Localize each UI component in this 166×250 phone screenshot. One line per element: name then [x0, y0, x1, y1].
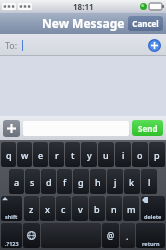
button[interactable]: j	[107, 169, 123, 194]
staticText: a	[14, 176, 20, 188]
staticText: v	[78, 203, 83, 215]
staticText: n	[111, 203, 117, 215]
staticText: t	[71, 149, 75, 161]
staticText: 18:11	[73, 1, 94, 12]
button[interactable]: y	[81, 142, 97, 167]
staticText: x	[45, 203, 50, 215]
staticText: return	[142, 240, 160, 247]
staticText: p	[154, 149, 160, 161]
button[interactable]: t	[65, 142, 80, 167]
staticText: To:	[5, 39, 18, 51]
button[interactable]: m	[123, 196, 139, 221]
button[interactable]: b	[89, 196, 105, 221]
staticText: g	[78, 176, 84, 188]
button[interactable]: at sign	[102, 223, 119, 248]
button[interactable]: k	[124, 169, 140, 194]
button[interactable]: Send	[132, 120, 163, 136]
button[interactable]: g	[73, 169, 89, 194]
button[interactable]: p	[149, 142, 165, 167]
staticText: .	[126, 230, 129, 242]
other: Charging	[140, 3, 147, 10]
button[interactable]: h	[90, 169, 106, 194]
button[interactable]: c	[56, 196, 71, 221]
staticText: shift	[5, 213, 18, 220]
button[interactable]: To:	[0, 34, 166, 56]
other: Battery	[149, 3, 164, 10]
staticText: d	[46, 176, 52, 188]
button[interactable]: .?123	[1, 223, 22, 248]
staticText: @	[107, 230, 115, 241]
button[interactable]: .	[120, 223, 135, 248]
staticText: i	[122, 149, 125, 161]
button[interactable]: delete	[141, 196, 165, 221]
staticText: u	[103, 149, 109, 161]
button[interactable]: l	[141, 169, 157, 194]
button[interactable]: v	[72, 196, 88, 221]
button[interactable]: z	[24, 196, 39, 221]
staticText: y	[87, 149, 92, 161]
staticText: f	[63, 176, 67, 188]
staticText: h	[95, 176, 101, 188]
staticText: delete	[144, 213, 162, 220]
button[interactable]: Add attachment	[3, 120, 20, 137]
button[interactable]: q	[1, 142, 16, 167]
staticText: e	[38, 149, 44, 161]
button[interactable]: a	[9, 169, 24, 194]
staticText: q	[6, 149, 12, 161]
staticText: c	[61, 203, 66, 215]
button[interactable]: Add contact	[148, 39, 161, 52]
other: Signal	[2, 3, 16, 10]
other: Signal	[18, 3, 32, 10]
staticText: .?123	[5, 240, 19, 247]
staticText: s	[30, 176, 35, 188]
staticText: l	[148, 176, 151, 188]
button[interactable]: f	[57, 169, 72, 194]
staticText: m	[127, 203, 136, 215]
button[interactable]: i	[115, 142, 131, 167]
button[interactable]: s	[25, 169, 40, 194]
staticText: b	[94, 203, 100, 215]
staticText: o	[137, 149, 143, 161]
button[interactable]: Cancel	[128, 16, 163, 31]
button[interactable]: return	[136, 223, 165, 248]
button[interactable]: Change language	[23, 223, 40, 248]
button[interactable]: n	[106, 196, 122, 221]
staticText: z	[29, 203, 34, 215]
button[interactable]: d	[41, 169, 56, 194]
button[interactable]: w	[17, 142, 32, 167]
button[interactable]: u	[98, 142, 114, 167]
staticText: j	[114, 176, 117, 188]
staticText: Send	[138, 123, 158, 134]
button[interactable]: e	[33, 142, 48, 167]
staticText: New Message	[42, 15, 125, 31]
button[interactable]: space	[41, 223, 101, 248]
staticText: r	[55, 149, 59, 161]
staticText: k	[129, 176, 135, 188]
staticText: w	[21, 149, 29, 161]
button[interactable]: x	[40, 196, 55, 221]
staticText: Cancel	[132, 18, 159, 29]
button[interactable]: r	[49, 142, 64, 167]
button[interactable]: shift	[1, 196, 22, 221]
button[interactable]: o	[132, 142, 148, 167]
